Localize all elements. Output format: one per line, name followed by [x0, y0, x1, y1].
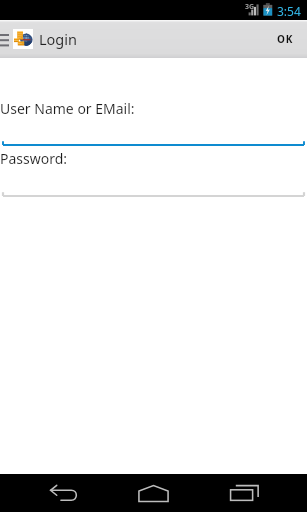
staticText: 3G	[245, 2, 255, 12]
button[interactable]	[0, 141, 307, 149]
button[interactable]	[0, 192, 307, 200]
staticText: Login	[39, 29, 77, 49]
button[interactable]: Back	[40, 474, 88, 512]
staticText: OK	[277, 32, 294, 46]
staticText: Password:	[0, 149, 68, 168]
button[interactable]: Open navigation drawer	[0, 20, 35, 58]
button[interactable]: Recent apps	[220, 474, 268, 512]
button[interactable]: Home	[129, 474, 177, 512]
staticText: 3:54	[277, 3, 301, 19]
staticText: User Name or EMail:	[0, 99, 135, 118]
button[interactable]: OK	[263, 20, 307, 58]
